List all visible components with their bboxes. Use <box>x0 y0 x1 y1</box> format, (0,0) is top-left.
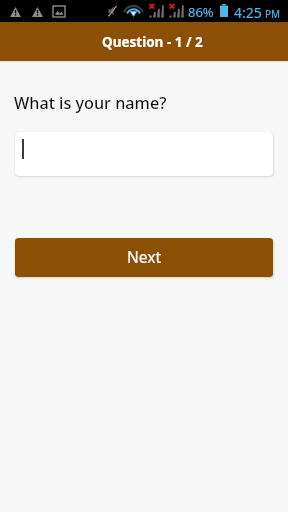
staticText: 86% <box>188 3 214 21</box>
button[interactable]: Next <box>15 238 273 277</box>
staticText: Question - 1 / 2 <box>102 33 203 51</box>
staticText: Next <box>127 246 162 267</box>
staticText: What is your name? <box>14 92 167 114</box>
button[interactable]: Answer text field <box>15 132 273 176</box>
staticText: PM <box>265 7 281 21</box>
staticText: 4:25 <box>234 3 262 22</box>
